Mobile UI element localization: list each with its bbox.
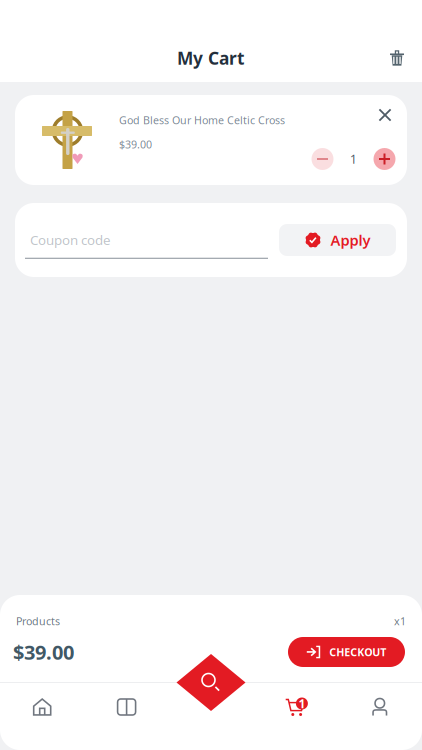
button[interactable]: Categories	[84, 682, 169, 732]
staticText: 1	[350, 151, 357, 167]
button[interactable]: Empty cart	[375, 36, 419, 80]
button[interactable]: Decrease quantity	[309, 146, 336, 172]
staticText: 1	[298, 695, 305, 711]
staticText: $39.00	[13, 639, 74, 665]
button[interactable]: Home	[0, 682, 84, 732]
button[interactable]: Remove item	[368, 98, 402, 132]
staticText: Apply	[330, 230, 370, 250]
staticText: x1	[394, 614, 406, 628]
button[interactable]: Search	[176, 654, 245, 711]
staticText: $39.00	[119, 137, 152, 151]
staticText: My Cart	[177, 46, 245, 69]
button[interactable]: Apply	[279, 224, 396, 256]
staticText: Products	[16, 614, 60, 628]
button[interactable]: Account	[338, 682, 422, 732]
button[interactable]: Cart	[253, 682, 338, 732]
button[interactable]: CHECKOUT	[288, 637, 405, 667]
button[interactable]: Increase quantity	[371, 146, 398, 172]
staticText: God Bless Our Home Celtic Cross	[119, 113, 285, 127]
staticText: Coupon code	[30, 231, 111, 249]
staticText: CHECKOUT	[329, 645, 386, 659]
